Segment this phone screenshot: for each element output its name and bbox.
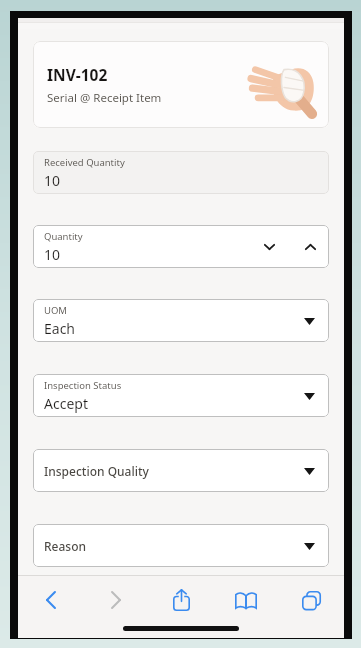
staticText: UOM [44, 304, 67, 317]
button[interactable]: Quantity [33, 225, 329, 268]
staticText: Received Quantity [44, 156, 125, 169]
button[interactable]: Inspection Status [33, 374, 329, 417]
button[interactable]: Received Quantity [33, 151, 329, 194]
staticText: Inspection Status [44, 379, 122, 392]
staticText: INV-102 [47, 64, 108, 85]
button[interactable]: Back [28, 583, 74, 617]
button[interactable]: Decrease quantity [256, 234, 282, 260]
button[interactable]: Reason [33, 524, 329, 567]
button[interactable]: Open Inspection Quality options [297, 459, 321, 483]
button[interactable]: Forward [93, 583, 139, 617]
staticText: Inspection Quality [44, 463, 149, 479]
button[interactable]: Increase quantity [297, 234, 323, 260]
staticText: Accept [44, 394, 88, 413]
button[interactable]: Bookmarks [223, 583, 269, 617]
button[interactable]: Tabs [288, 583, 334, 617]
staticText: Quantity [44, 230, 83, 243]
button[interactable]: Open Accept options [297, 384, 321, 408]
button[interactable]: INV-102 [33, 41, 329, 128]
staticText: Each [44, 319, 76, 338]
button[interactable]: Open Reason options [297, 534, 321, 558]
staticText: 10 [44, 245, 61, 264]
button[interactable]: Share [158, 583, 204, 617]
staticText: Reason [44, 538, 87, 554]
staticText: Serial @ Receipt Item [47, 90, 162, 106]
staticText: 10 [44, 171, 61, 190]
button[interactable]: Inspection Quality [33, 449, 329, 492]
button[interactable]: Open Each options [297, 309, 321, 333]
button[interactable]: UOM [33, 299, 329, 342]
